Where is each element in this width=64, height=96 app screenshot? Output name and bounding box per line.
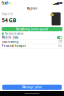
staticText: Mobile data: [2, 36, 18, 39]
staticText: Personal hotspot: [2, 44, 26, 48]
staticText: ▂▄▆: [53, 1, 59, 4]
staticText: My plan: [26, 7, 37, 10]
button[interactable]: Manage plan: [2, 85, 62, 90]
staticText: 54 GB: [2, 17, 17, 24]
staticText: Off: [58, 40, 62, 43]
staticText: Data roaming: [2, 40, 19, 43]
staticText: Network active: [5, 32, 24, 35]
button[interactable]: Data roaming: [0, 40, 64, 44]
staticText: Manage plan: [22, 85, 42, 89]
staticText: Data left: [2, 12, 13, 16]
staticText: On: [58, 44, 62, 48]
staticText: Everything looks good: [16, 27, 48, 31]
staticText: 9:41: [2, 0, 9, 6]
button[interactable]: Mobile data: [0, 35, 64, 40]
button[interactable]: Personal hotspot: [0, 44, 64, 48]
